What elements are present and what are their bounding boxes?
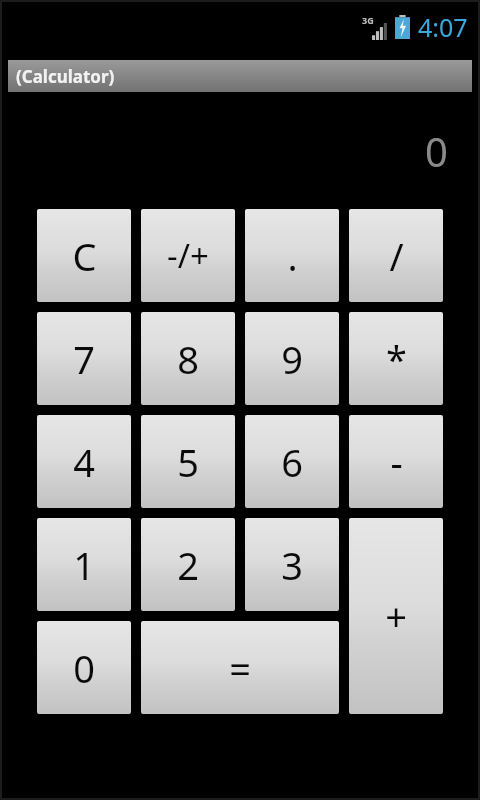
staticText: . [287,230,298,282]
button[interactable]: = [141,621,339,714]
staticText: / [389,230,404,282]
button[interactable]: / [349,209,443,302]
staticText: 1 [73,539,95,591]
staticText: 4 [73,436,95,488]
button[interactable]: * [349,312,443,405]
staticText: 8 [177,333,199,385]
button[interactable]: . [245,209,339,302]
button[interactable]: 1 [37,518,131,611]
button[interactable]: C [37,209,131,302]
staticText: 2 [177,539,199,591]
staticText: - [390,436,403,488]
staticText: (Calculator) [16,65,115,88]
button[interactable]: 9 [245,312,339,405]
staticText: 6 [281,436,303,488]
staticText: 9 [281,333,303,385]
staticText: C [72,230,97,282]
staticText: 0 [73,642,95,694]
staticText: 5 [177,436,199,488]
button[interactable]: 6 [245,415,339,508]
staticText: 4:07 [418,10,468,44]
staticText: + [385,590,407,642]
button[interactable]: (Calculator) [8,60,472,92]
staticText: -/+ [167,233,209,278]
button[interactable]: 2 [141,518,235,611]
button[interactable]: 8 [141,312,235,405]
button[interactable]: -/+ [141,209,235,302]
button[interactable]: 7 [37,312,131,405]
staticText: 7 [73,333,95,385]
button[interactable]: 5 [141,415,235,508]
button[interactable]: 0 [37,621,131,714]
staticText: * [386,333,407,385]
button[interactable]: + [349,518,443,714]
staticText: 3G [362,14,374,26]
button[interactable]: 4 [37,415,131,508]
staticText: = [229,642,251,694]
staticText: 3 [281,539,303,591]
staticText: 0 [425,124,448,178]
button[interactable]: 3 [245,518,339,611]
button[interactable]: - [349,415,443,508]
